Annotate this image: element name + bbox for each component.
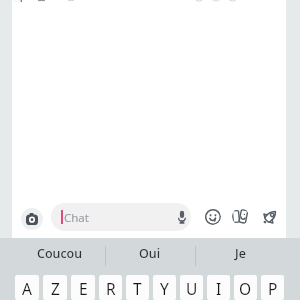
button[interactable]: O [234,275,257,300]
staticText: Y [160,278,169,299]
button[interactable]: Chat [51,203,191,231]
button[interactable]: Coucou [15,238,105,275]
button[interactable]: A [15,275,39,300]
staticText: Chat [64,210,89,226]
button[interactable]: Send [261,208,278,225]
staticText: Z [51,278,60,299]
button[interactable]: R [99,275,122,300]
button[interactable]: Take photo [21,208,43,230]
button[interactable]: I [207,275,230,300]
button[interactable]: Oui [105,238,195,275]
staticText: E [79,278,88,299]
staticText: Oui [139,245,161,262]
button[interactable]: Z [43,275,67,300]
staticText: Je [235,245,246,262]
staticText: T [133,278,142,299]
button[interactable]: U [180,275,203,300]
button[interactable]: E [71,275,95,300]
button[interactable]: Stickers [232,208,249,225]
staticText: A [22,278,32,299]
button[interactable]: Y [153,275,176,300]
staticText: Coucou [37,245,83,262]
staticText: P [268,278,278,299]
staticText: I [216,278,222,299]
button[interactable]: P [261,275,284,300]
button[interactable]: Voice message [173,208,190,225]
staticText: R [106,278,116,299]
button[interactable]: Emoji [204,208,221,225]
staticText: U [186,278,198,299]
button[interactable]: Je [195,238,285,275]
button[interactable]: T [126,275,149,300]
staticText: O [239,278,252,299]
